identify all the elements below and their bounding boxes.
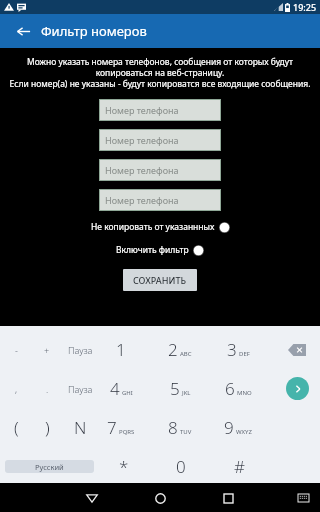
staticText: .: [46, 383, 49, 395]
staticText: 19:25: [293, 1, 317, 13]
button[interactable]: N: [58, 408, 102, 447]
staticText: 0: [176, 455, 186, 478]
staticText: GHI: [122, 389, 133, 397]
staticText: 4: [110, 377, 120, 400]
staticText: ,: [15, 383, 18, 395]
staticText: *: [119, 455, 129, 478]
button[interactable]: Enter: [286, 377, 309, 400]
staticText: Если номер(а) не указаны - будут копиров…: [8, 78, 312, 90]
staticText: 2: [168, 338, 178, 361]
staticText: 1: [116, 338, 126, 361]
staticText: MNO: [237, 389, 252, 397]
staticText: WXYZ: [236, 428, 252, 436]
button[interactable]: Русский: [5, 460, 94, 473]
staticText: Фильтр номеров: [41, 22, 147, 40]
staticText: N: [74, 416, 87, 439]
button[interactable]: Не копировать от указаннных: [91, 221, 230, 233]
staticText: Номер телефона: [105, 194, 179, 206]
button[interactable]: 8: [158, 408, 202, 447]
button[interactable]: 7: [99, 408, 143, 447]
staticText: Пауза: [68, 383, 93, 395]
staticText: Номер телефона: [105, 104, 179, 116]
button[interactable]: 1: [99, 330, 143, 369]
button[interactable]: Пауза: [58, 330, 102, 369]
staticText: Можно указать номера телефонов, сообщени…: [8, 56, 312, 78]
staticText: Включить фильтр: [116, 244, 189, 256]
staticText: ): [45, 416, 50, 439]
staticText: Номер телефона: [105, 134, 179, 146]
button[interactable]: *: [102, 447, 146, 486]
staticText: Русский: [35, 462, 64, 472]
staticText: PQRS: [119, 428, 135, 436]
staticText: #: [234, 455, 245, 478]
button[interactable]: Номер телефона: [99, 99, 221, 121]
staticText: -: [15, 344, 18, 356]
button[interactable]: Recent apps: [214, 484, 242, 512]
button[interactable]: 3: [216, 330, 260, 369]
button[interactable]: СОХРАНИТЬ: [123, 269, 197, 291]
button[interactable]: Back: [9, 17, 37, 45]
button[interactable]: (: [0, 408, 38, 447]
button[interactable]: Номер телефона: [99, 129, 221, 151]
button[interactable]: Backspace: [284, 340, 310, 360]
staticText: СОХРАНИТЬ: [133, 274, 187, 286]
button[interactable]: 5: [158, 369, 202, 408]
button[interactable]: Switch keyboard: [293, 488, 313, 508]
staticText: DEF: [239, 350, 250, 358]
button[interactable]: ): [25, 408, 69, 447]
button[interactable]: Home: [146, 484, 174, 512]
staticText: +: [44, 344, 50, 356]
staticText: 5: [170, 377, 180, 400]
staticText: Номер телефона: [105, 164, 179, 176]
button[interactable]: 6: [216, 369, 260, 408]
staticText: Не копировать от указаннных: [91, 221, 215, 233]
staticText: ABC: [180, 350, 192, 358]
staticText: 6: [225, 377, 235, 400]
staticText: Пауза: [68, 344, 93, 356]
button[interactable]: Включить фильтр: [116, 244, 204, 256]
staticText: (: [14, 416, 19, 439]
button[interactable]: +: [25, 330, 69, 369]
button[interactable]: 2: [158, 330, 202, 369]
button[interactable]: 4: [99, 369, 143, 408]
button[interactable]: Номер телефона: [99, 189, 221, 211]
button[interactable]: 9: [216, 408, 260, 447]
button[interactable]: #: [217, 447, 261, 486]
staticText: 9: [224, 416, 234, 439]
button[interactable]: Пауза: [58, 369, 102, 408]
staticText: JKL: [182, 389, 191, 397]
staticText: 8: [168, 416, 178, 439]
staticText: TUV: [180, 428, 192, 436]
staticText: 3: [227, 338, 237, 361]
button[interactable]: Back: [78, 484, 106, 512]
button[interactable]: Номер телефона: [99, 159, 221, 181]
button[interactable]: 0: [159, 447, 203, 486]
staticText: 7: [107, 416, 117, 439]
